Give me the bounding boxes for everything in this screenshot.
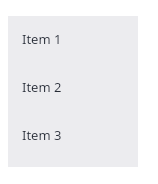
button[interactable]: Item 2	[8, 78, 138, 96]
button[interactable]: Item 3	[8, 126, 138, 144]
button[interactable]: Item 1	[8, 30, 138, 48]
staticText: Item 1	[22, 30, 62, 48]
staticText: Item 2	[22, 78, 62, 96]
staticText: Item 3	[22, 126, 62, 144]
